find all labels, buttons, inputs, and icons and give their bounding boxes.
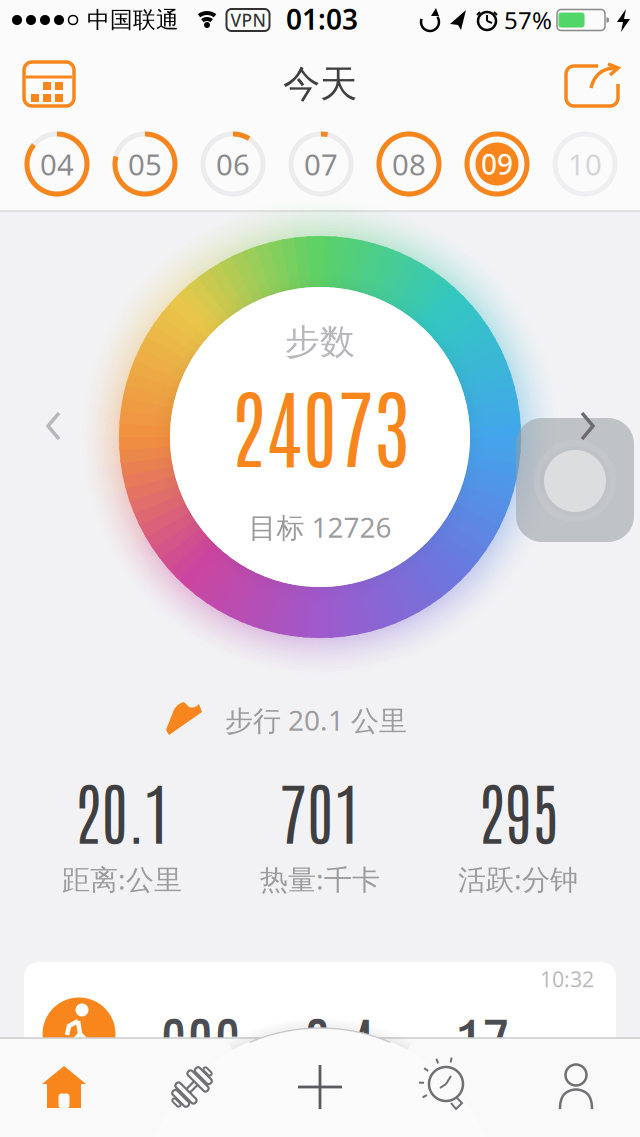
staticText: 热量:千卡 xyxy=(260,860,380,898)
button[interactable]: 08 xyxy=(378,133,440,195)
button[interactable]: Workouts xyxy=(128,1038,255,1135)
staticText: 活跃:分钟 xyxy=(458,860,578,898)
button[interactable]: Next xyxy=(579,411,595,441)
staticText: 今天 xyxy=(283,61,357,107)
staticText: 24073 xyxy=(230,367,410,479)
button[interactable]: Me xyxy=(512,1038,639,1135)
staticText: 57% xyxy=(504,4,552,36)
staticText: 09 xyxy=(481,145,513,183)
staticText: 目标 12726 xyxy=(248,508,391,546)
staticText: 295 xyxy=(477,767,558,853)
staticText: 05 xyxy=(128,144,162,183)
staticText: 10:32 xyxy=(540,965,594,993)
staticText: 0.4 xyxy=(303,1001,374,1087)
button[interactable]: Home xyxy=(0,1038,127,1135)
staticText: 千卡 xyxy=(509,1036,555,1064)
staticText: 17 xyxy=(455,1001,509,1087)
staticText: 701 xyxy=(279,767,360,853)
button[interactable]: 09 xyxy=(466,133,528,195)
staticText: 606 xyxy=(159,1001,240,1087)
staticText: 04 xyxy=(40,144,74,183)
button[interactable]: 05 xyxy=(114,133,176,195)
staticText: 公里 xyxy=(371,1036,417,1064)
staticText: 10 xyxy=(568,144,602,183)
staticText: 步 xyxy=(240,1036,263,1064)
button[interactable]: Previous xyxy=(46,411,62,441)
staticText: 20.1 xyxy=(74,767,170,853)
button[interactable]: 10 xyxy=(554,133,616,195)
button[interactable]: Calendar xyxy=(23,60,75,108)
button[interactable]: 04 xyxy=(26,133,88,195)
staticText: 06 xyxy=(216,144,250,183)
staticText: 中国联通 xyxy=(87,6,179,34)
button[interactable]: Tips xyxy=(383,1037,510,1134)
button[interactable]: Add xyxy=(256,1038,383,1135)
staticText: 距离:公里 xyxy=(62,860,182,898)
staticText: 07 xyxy=(304,144,338,183)
staticText: 步数 xyxy=(285,321,355,363)
staticText: 01:03 xyxy=(286,0,358,38)
staticText: 步行 20.1 公里 xyxy=(225,701,407,739)
button[interactable]: 606 xyxy=(24,962,616,1082)
button[interactable]: AssistiveTouch xyxy=(516,418,634,542)
button[interactable]: 07 xyxy=(290,133,352,195)
button[interactable]: 06 xyxy=(202,133,264,195)
button[interactable]: Share xyxy=(565,61,621,107)
staticText: 08 xyxy=(392,144,426,183)
staticText: VPN xyxy=(230,8,265,31)
